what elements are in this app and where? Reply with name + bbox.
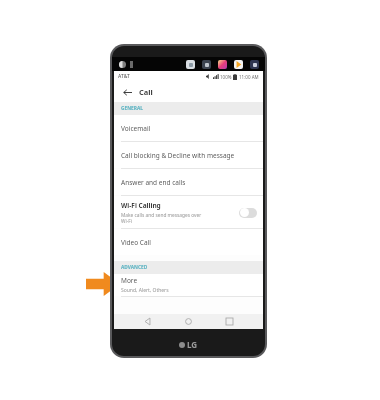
button[interactable]: Recents [222, 314, 237, 329]
button[interactable]: Home [181, 314, 196, 329]
button[interactable]: Answer and end calls [114, 169, 263, 195]
staticText: AT&T [118, 73, 130, 80]
staticText: Sound, Alert, Others [121, 287, 169, 294]
staticText: Make calls and send messages over Wi-Fi [121, 212, 202, 224]
staticText: LG [187, 339, 198, 350]
staticText: More [121, 276, 138, 285]
button[interactable]: Video Call [114, 229, 263, 255]
staticText: Call blocking & Decline with message [121, 151, 235, 160]
button[interactable]: Back [140, 314, 155, 329]
button[interactable]: Call blocking & Decline with message [114, 142, 263, 168]
button[interactable]: More [114, 274, 263, 296]
staticText: Video Call [121, 238, 151, 247]
button[interactable]: Back [121, 86, 134, 99]
staticText: 100% [220, 74, 232, 80]
staticText: 11:00 AM [239, 74, 259, 80]
staticText: Call [139, 87, 153, 97]
staticText: Voicemail [121, 124, 151, 133]
staticText: Answer and end calls [121, 178, 186, 187]
button[interactable]: Voicemail [114, 115, 263, 141]
staticText: ADVANCED [121, 264, 148, 271]
button[interactable]: Wi-Fi Calling [114, 196, 263, 228]
staticText: GENERAL [121, 105, 143, 112]
staticText: Wi-Fi Calling [121, 201, 161, 210]
button[interactable]: Wi-Fi Calling toggle [239, 207, 257, 218]
